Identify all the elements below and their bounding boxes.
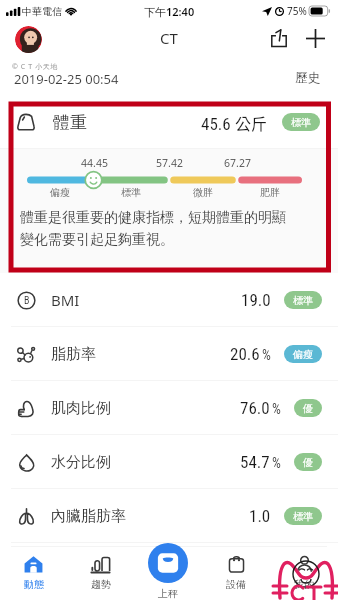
staticText: 優 — [303, 456, 313, 469]
staticText: 19.0 — [241, 290, 271, 310]
staticText: 中華電信 — [22, 5, 62, 18]
staticText: 脂肪率 — [51, 345, 96, 364]
staticText: © C T 小天地 — [12, 62, 58, 72]
staticText: 76.0 — [240, 398, 270, 418]
button[interactable]: 我的 — [270, 546, 338, 600]
staticText: 肥胖 — [260, 186, 280, 199]
staticText: 微胖 — [193, 186, 213, 199]
staticText: 趨勢 — [91, 578, 111, 591]
staticText: % — [262, 347, 271, 363]
staticText: BMI — [51, 290, 80, 310]
button[interactable]: 內臟脂肪率 — [0, 489, 338, 543]
staticText: 偏瘦 — [50, 186, 70, 199]
staticText: 歷史 — [295, 70, 320, 86]
staticText: 57.42 — [156, 156, 183, 170]
staticText: 設備 — [226, 578, 246, 591]
staticText: % — [272, 401, 281, 417]
staticText: 偏瘦 — [293, 348, 313, 361]
staticText: 體重是很重要的健康指標，短期體重的明顯變化需要引起足夠重視。 — [20, 209, 294, 249]
button[interactable]: 動態 — [0, 546, 67, 600]
staticText: % — [272, 455, 281, 471]
staticText: 水分比例 — [51, 453, 111, 472]
staticText: 優 — [303, 402, 313, 415]
staticText: 45.6 — [201, 114, 231, 134]
staticText: 上秤 — [158, 587, 178, 600]
staticText: 內臟脂肪率 — [51, 507, 126, 526]
button[interactable]: 水分比例 — [0, 435, 338, 489]
staticText: 54.7 — [240, 452, 270, 472]
button[interactable]: 體重 — [0, 96, 338, 148]
staticText: 下午12:40 — [144, 4, 195, 19]
staticText: 20.6 — [230, 344, 260, 364]
staticText: 肌肉比例 — [51, 399, 111, 418]
button[interactable]: 上秤 — [134, 546, 202, 600]
button[interactable]: 脂肪率 — [0, 327, 338, 381]
button[interactable]: 趨勢 — [67, 546, 134, 600]
button[interactable]: B — [0, 273, 338, 327]
staticText: 標準 — [291, 116, 311, 129]
staticText: CT — [160, 28, 178, 48]
staticText: 我的 — [294, 578, 314, 591]
staticText: 動態 — [24, 578, 44, 591]
staticText: 1.0 — [249, 506, 271, 526]
staticText: B — [24, 295, 30, 307]
button[interactable]: Share — [264, 23, 294, 53]
staticText: 標準 — [293, 510, 313, 523]
staticText: 標準 — [121, 186, 141, 199]
staticText: 75% — [287, 4, 307, 18]
staticText: 標準 — [293, 294, 313, 307]
staticText: 體重 — [53, 112, 87, 133]
staticText: 公斤 — [235, 111, 268, 134]
button[interactable]: 肌肉比例 — [0, 381, 338, 435]
staticText: 67.27 — [224, 156, 251, 170]
button[interactable]: 設備 — [202, 546, 270, 600]
button[interactable]: Add — [300, 23, 330, 53]
button[interactable]: Profile — [15, 26, 42, 53]
button[interactable]: 歷史 — [285, 64, 338, 92]
staticText: 44.45 — [81, 156, 108, 170]
staticText: 2019-02-25 00:54 — [14, 70, 119, 88]
